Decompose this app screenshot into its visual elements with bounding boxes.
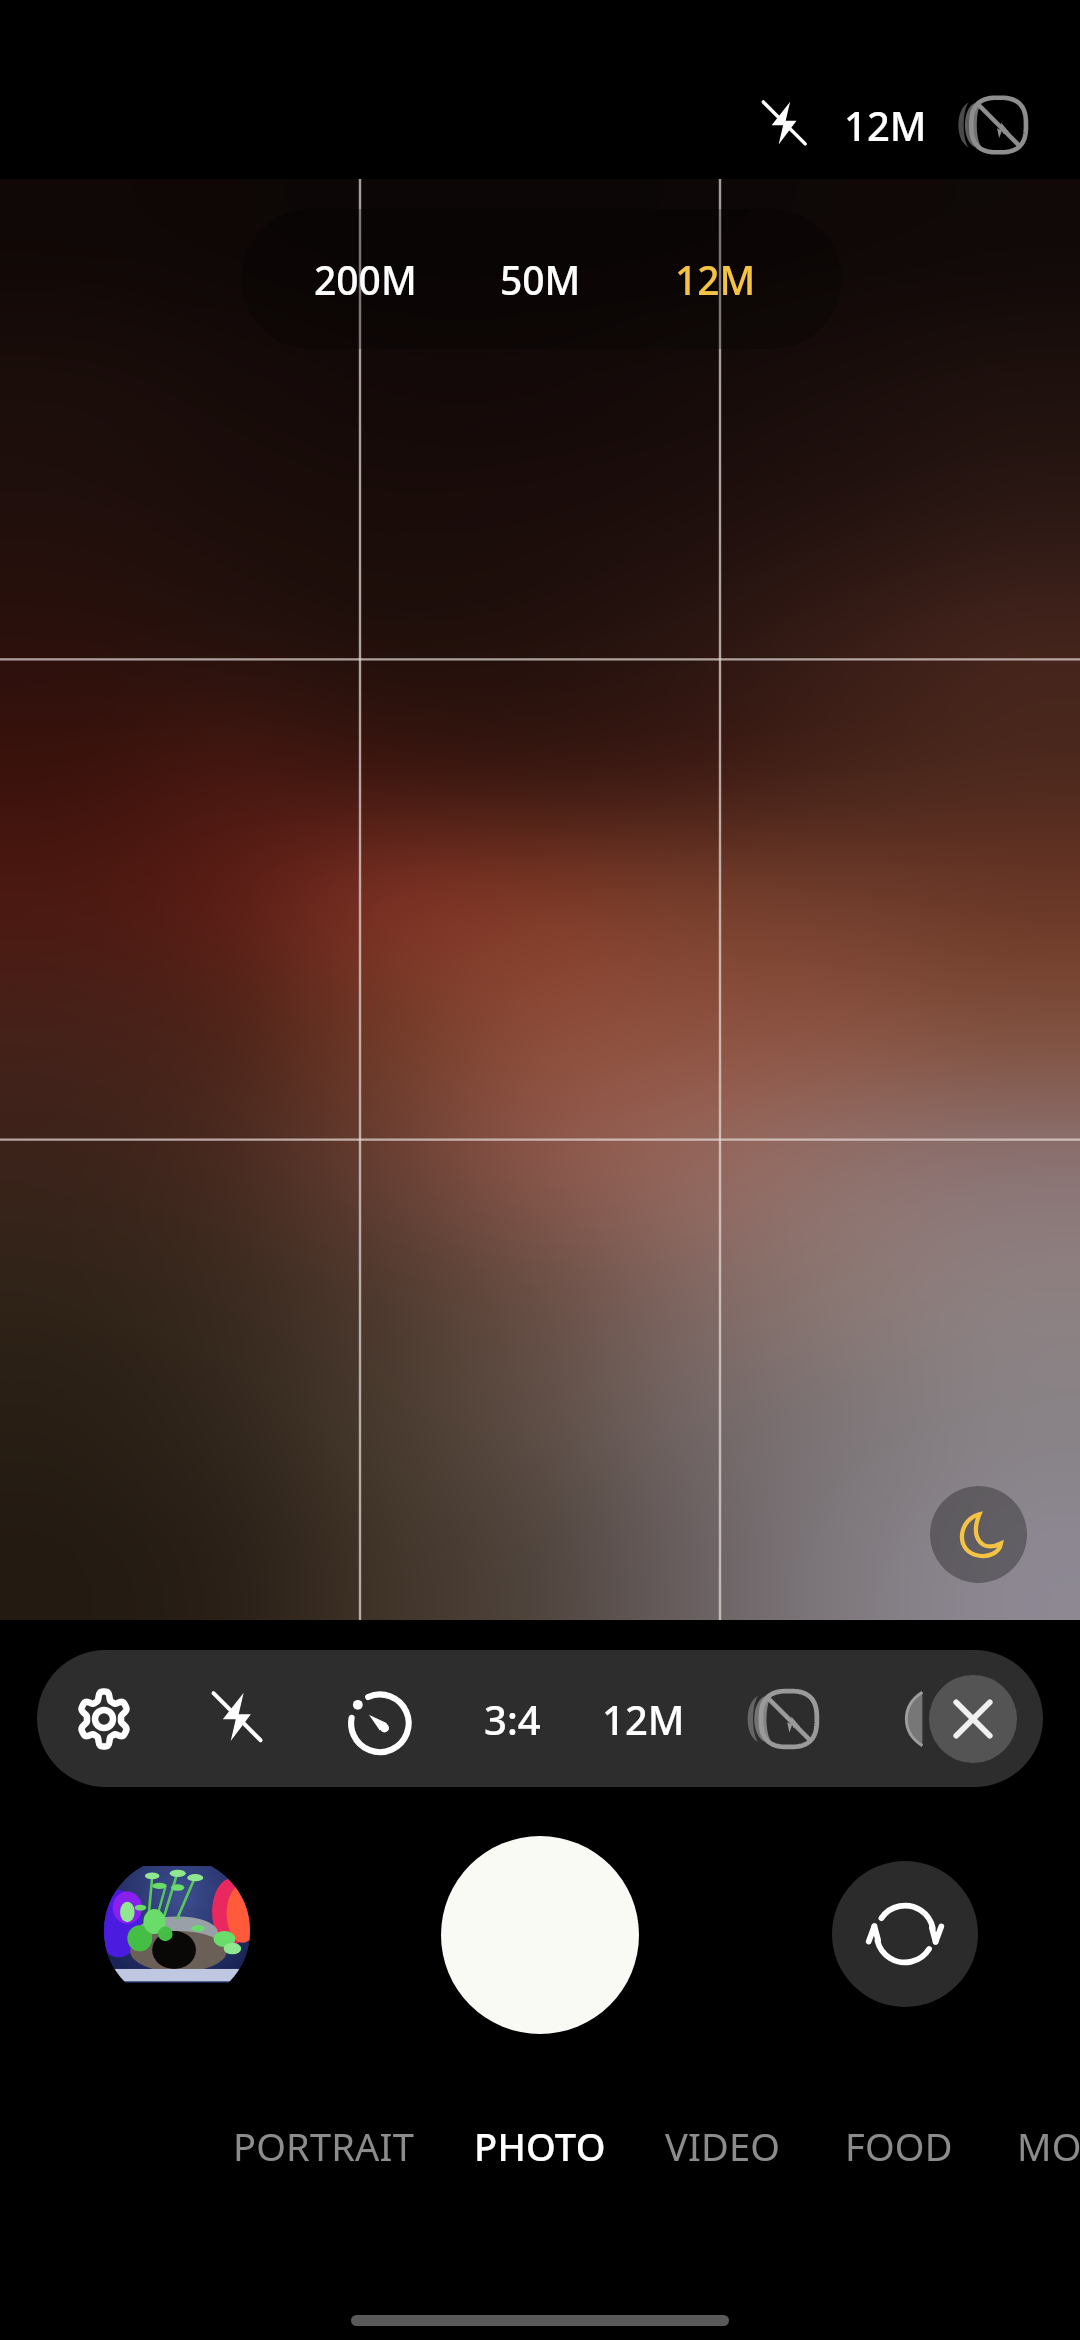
button[interactable]: Timer — [322, 1664, 432, 1774]
staticText: 50M — [500, 253, 581, 306]
staticText: VIDEO — [665, 2120, 781, 2172]
button[interactable]: VIDEO — [583, 2104, 863, 2188]
staticText: PORTRAIT — [233, 2120, 414, 2172]
button[interactable]: PORTRAIT — [183, 2104, 463, 2188]
staticText: PHOTO — [474, 2120, 606, 2172]
button[interactable]: Shutter — [441, 1836, 639, 2034]
button[interactable]: 12M — [583, 1650, 703, 1787]
staticText: FOOD — [845, 2120, 953, 2172]
button[interactable]: Night mode — [930, 1486, 1027, 1583]
staticText: 12M — [844, 98, 927, 152]
button[interactable]: 12M — [815, 75, 955, 175]
button[interactable]: 200M — [275, 209, 455, 349]
button[interactable]: Gallery — [104, 1858, 250, 2004]
button[interactable]: 50M — [450, 209, 630, 349]
staticText: 12M — [602, 1692, 685, 1746]
button[interactable]: Close — [929, 1675, 1017, 1763]
button[interactable]: 3:4 — [452, 1650, 572, 1787]
staticText: 200M — [314, 253, 417, 306]
button[interactable]: Motion photo off — [934, 70, 1044, 180]
button[interactable]: Flash off — [731, 70, 841, 180]
staticText: 3:4 — [484, 1692, 541, 1746]
button[interactable]: Filter — [843, 1664, 953, 1774]
button[interactable]: Settings — [49, 1664, 159, 1774]
staticText: 12M — [675, 253, 756, 306]
staticText: MORE — [1017, 2120, 1080, 2172]
button[interactable]: FOOD — [759, 2104, 1039, 2188]
button[interactable]: Flash off — [184, 1664, 294, 1774]
button[interactable]: Motion photo off — [724, 1664, 834, 1774]
button[interactable]: PHOTO — [400, 2104, 680, 2188]
button[interactable]: Switch camera — [832, 1861, 978, 2007]
button[interactable]: 12M — [625, 209, 805, 349]
button[interactable]: MORE — [932, 2104, 1080, 2188]
